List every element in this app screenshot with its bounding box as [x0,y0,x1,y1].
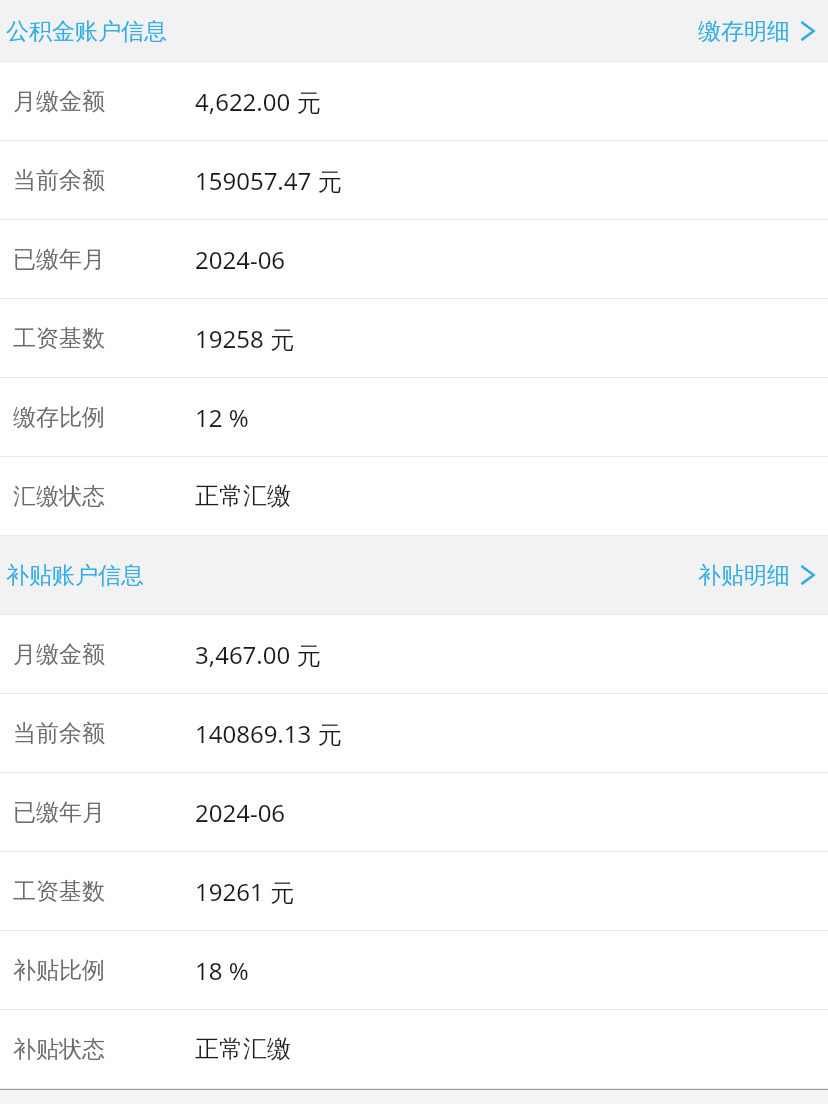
staticText: 19261 元 [195,875,294,908]
button[interactable]: 当前余额 [0,694,828,772]
button[interactable]: 补贴状态 [0,1010,828,1088]
staticText: 当前余额 [13,166,105,195]
staticText: 汇缴状态 [13,482,105,511]
button[interactable]: 工资基数 [0,852,828,930]
button[interactable]: 工资基数 [0,299,828,377]
staticText: 140869.13 元 [195,717,342,750]
staticText: 正常汇缴 [195,1034,291,1064]
staticText: 当前余额 [13,719,105,748]
staticText: 补贴状态 [13,1035,105,1064]
staticText: 补贴账户信息 [6,561,144,590]
staticText: 公积金账户信息 [6,17,167,46]
button[interactable]: 已缴年月 [0,773,828,851]
staticText: 4,622.00 元 [195,85,321,118]
button[interactable]: 汇缴状态 [0,457,828,535]
staticText: 已缴年月 [13,798,105,827]
staticText: 月缴金额 [13,640,105,669]
staticText: 2024-06 [195,796,286,829]
staticText: 19258 元 [195,322,294,355]
other: 缴存明细 [798,15,818,47]
other: 补贴明细 [798,559,818,591]
button[interactable]: 月缴金额 [0,62,828,140]
button[interactable]: 补贴比例 [0,931,828,1009]
staticText: 159057.47 元 [195,164,342,197]
staticText: 工资基数 [13,877,105,906]
staticText: 已缴年月 [13,245,105,274]
staticText: 缴存明细 [698,17,790,46]
staticText: 正常汇缴 [195,481,291,511]
staticText: 12 % [195,401,249,434]
staticText: 月缴金额 [13,87,105,116]
button[interactable]: 缴存比例 [0,378,828,456]
staticText: 工资基数 [13,324,105,353]
staticText: 2024-06 [195,243,286,276]
button[interactable]: 缴存明细 [694,11,822,51]
button[interactable]: 已缴年月 [0,220,828,298]
staticText: 补贴明细 [698,561,790,590]
button[interactable]: 月缴金额 [0,615,828,693]
staticText: 缴存比例 [13,403,105,432]
button[interactable]: 当前余额 [0,141,828,219]
staticText: 补贴比例 [13,956,105,985]
staticText: 3,467.00 元 [195,638,321,671]
button[interactable]: 补贴明细 [694,555,822,595]
staticText: 18 % [195,954,249,987]
